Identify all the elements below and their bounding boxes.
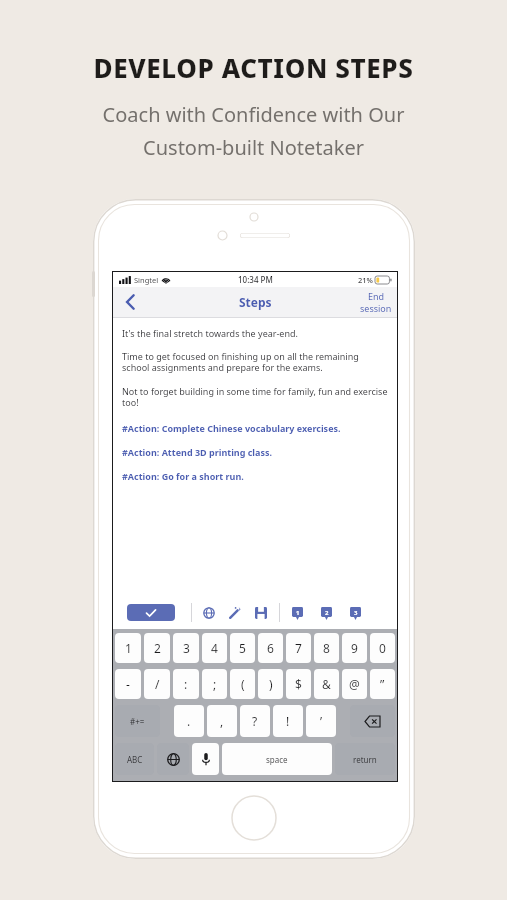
button[interactable]: 3 — [173, 633, 199, 663]
staticText: ? — [252, 713, 258, 729]
button[interactable]: space — [222, 743, 332, 775]
staticText: return — [353, 754, 377, 765]
staticText: #Action: Complete Chinese vocabulary exe… — [122, 422, 341, 434]
staticText: ’ — [320, 713, 323, 729]
button[interactable]: 9 — [342, 633, 367, 663]
staticText: 5 — [239, 640, 246, 656]
button[interactable]: Highlight — [227, 605, 243, 621]
staticText: #Action: Go for a short run. — [122, 470, 244, 482]
button[interactable]: ! — [273, 705, 303, 737]
button[interactable]: - — [115, 669, 141, 699]
button[interactable]: Dictate — [192, 743, 219, 775]
button[interactable]: Tag three — [347, 605, 363, 621]
staticText: - — [126, 676, 130, 692]
button[interactable]: / — [144, 669, 170, 699]
staticText: 10:34 PM — [238, 274, 273, 285]
staticText: ! — [286, 713, 290, 729]
staticText: #+= — [130, 716, 145, 727]
button[interactable]: @ — [342, 669, 367, 699]
staticText: 3 — [183, 640, 190, 656]
staticText: Custom-built Notetaker — [0, 134, 507, 161]
button[interactable]: 7 — [286, 633, 311, 663]
staticText: . — [187, 713, 191, 729]
staticText: Singtel — [134, 275, 159, 285]
staticText: ” — [380, 676, 385, 692]
staticText: 3 — [354, 609, 358, 617]
button[interactable]: 2 — [144, 633, 170, 663]
staticText: Time to get focused on finishing up on a… — [122, 350, 388, 374]
button[interactable]: : — [173, 669, 199, 699]
button[interactable]: 4 — [202, 633, 227, 663]
staticText: : — [184, 676, 188, 692]
staticText: & — [322, 676, 331, 692]
staticText: @ — [349, 676, 360, 692]
button[interactable]: . — [174, 705, 204, 737]
staticText: $ — [295, 676, 302, 692]
button[interactable]: End — [360, 290, 392, 314]
button[interactable]: & — [314, 669, 339, 699]
staticText: , — [220, 713, 224, 729]
button[interactable]: $ — [286, 669, 311, 699]
staticText: ; — [213, 676, 217, 692]
staticText: 9 — [351, 640, 358, 656]
staticText: DEVELOP ACTION STEPS — [0, 50, 507, 85]
staticText: End — [368, 290, 385, 302]
button[interactable]: Tag one — [289, 605, 305, 621]
staticText: 7 — [295, 640, 302, 656]
staticText: 6 — [267, 640, 274, 656]
button[interactable]: ( — [230, 669, 255, 699]
staticText: ( — [241, 676, 245, 692]
button[interactable]: Tag two — [318, 605, 334, 621]
button[interactable]: #+= — [115, 705, 160, 737]
staticText: space — [266, 754, 288, 765]
staticText: 1 — [296, 609, 300, 617]
staticText: 2 — [325, 609, 329, 617]
button[interactable]: Save — [253, 605, 269, 621]
staticText: 21% — [358, 275, 373, 285]
staticText: It's the final stretch towards the year-… — [122, 327, 298, 339]
staticText: 4 — [211, 640, 218, 656]
button[interactable]: ABC — [115, 743, 154, 775]
staticText: ABC — [127, 754, 143, 765]
button[interactable]: Backspace — [350, 705, 395, 737]
button[interactable]: ; — [202, 669, 227, 699]
staticText: session — [360, 302, 392, 314]
button[interactable]: Confirm — [127, 604, 175, 621]
staticText: Coach with Confidence with Our — [0, 101, 507, 128]
button[interactable]: 1 — [115, 633, 141, 663]
button[interactable]: ’ — [306, 705, 336, 737]
staticText: Steps — [239, 294, 272, 310]
button[interactable]: ) — [258, 669, 283, 699]
button[interactable]: 8 — [314, 633, 339, 663]
button[interactable]: return — [335, 743, 395, 775]
staticText: 2 — [154, 640, 161, 656]
staticText: #Action: Attend 3D printing class. — [122, 446, 273, 458]
button[interactable]: Next keyboard — [157, 743, 189, 775]
staticText: 0 — [379, 640, 386, 656]
staticText: 8 — [323, 640, 330, 656]
button[interactable]: Back — [113, 287, 147, 317]
button[interactable]: 5 — [230, 633, 255, 663]
button[interactable]: , — [207, 705, 237, 737]
button[interactable]: 0 — [370, 633, 395, 663]
button[interactable]: ? — [240, 705, 270, 737]
staticText: / — [155, 676, 160, 692]
staticText: 1 — [125, 640, 132, 656]
button[interactable]: 6 — [258, 633, 283, 663]
button[interactable]: ” — [370, 669, 395, 699]
button[interactable]: Translate — [201, 605, 217, 621]
staticText: Not to forget building in some time for … — [122, 385, 388, 409]
staticText: ) — [269, 676, 273, 692]
